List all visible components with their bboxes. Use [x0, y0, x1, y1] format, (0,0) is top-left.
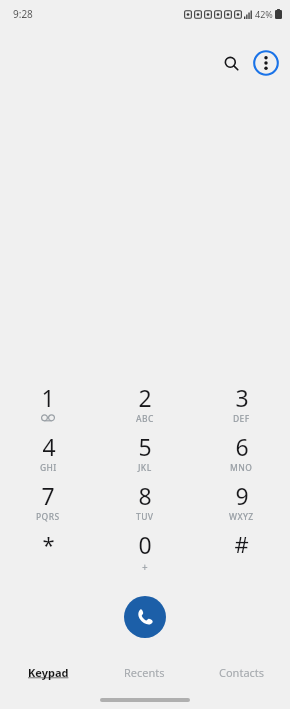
staticText: 0 [138, 529, 152, 560]
staticText: # [234, 529, 249, 559]
button[interactable]: 7 [0, 480, 96, 529]
staticText: 9:28 [13, 7, 33, 21]
button[interactable]: Call [124, 596, 166, 638]
staticText: ABC [136, 413, 154, 425]
staticText: 3 [235, 382, 249, 413]
staticText: 5 [138, 431, 152, 462]
staticText: TUV [136, 511, 154, 523]
button[interactable]: 3 [193, 382, 290, 431]
staticText: 4 [42, 431, 56, 462]
staticText: 9 [235, 480, 249, 511]
staticText: 1 [41, 382, 55, 413]
button[interactable]: 2 [96, 382, 193, 431]
button[interactable]: Search [216, 48, 246, 78]
staticText: 2 [138, 382, 152, 413]
staticText: 6 [235, 431, 249, 462]
button[interactable]: 4 [0, 431, 96, 480]
button[interactable]: 5 [96, 431, 193, 480]
button[interactable]: 6 [193, 431, 290, 480]
button[interactable]: 9 [193, 480, 290, 529]
button[interactable]: # [193, 529, 290, 578]
staticText: Contacts [219, 665, 265, 680]
staticText: 42% [255, 8, 273, 20]
button[interactable]: 0 [96, 529, 193, 578]
staticText: DEF [233, 413, 250, 425]
button[interactable]: Keypad [0, 656, 96, 688]
staticText: + [142, 560, 148, 574]
button[interactable]: * [0, 529, 96, 578]
staticText: MNO [230, 462, 253, 474]
staticText: GHI [40, 462, 57, 474]
staticText: 7 [41, 480, 55, 511]
staticText: 8 [138, 480, 152, 511]
button[interactable]: Contacts [193, 656, 290, 688]
staticText: Recents [124, 665, 165, 680]
staticText: Keypad [28, 665, 69, 680]
button[interactable]: Recents [96, 656, 193, 688]
button[interactable]: 8 [96, 480, 193, 529]
button[interactable]: More options [251, 48, 281, 78]
staticText: WXYZ [229, 511, 254, 523]
staticText: * [42, 529, 55, 559]
staticText: JKL [138, 462, 152, 474]
button[interactable]: 1 [0, 382, 96, 431]
staticText: PQRS [36, 511, 60, 523]
